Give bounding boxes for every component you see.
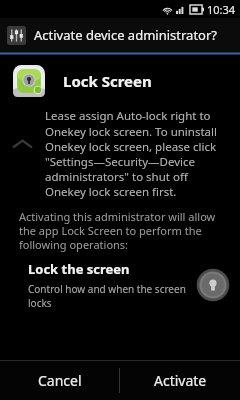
staticText: Activate device administrator?	[34, 26, 217, 44]
staticText: 10:34	[207, 2, 236, 17]
staticText: Activating this administrator will allow…	[19, 209, 226, 252]
staticText: Control how and when the screen locks	[28, 282, 190, 310]
button[interactable]: Collapse	[0, 107, 45, 181]
staticText: Lease assign Auto-lock right to Onekey l…	[45, 108, 230, 199]
staticText: Cancel	[38, 371, 82, 390]
staticText: Activate	[154, 371, 207, 390]
staticText: Lock the screen	[28, 260, 130, 278]
button[interactable]: Activate	[120, 361, 240, 400]
button[interactable]: Cancel	[0, 361, 119, 400]
staticText: Lock Screen	[63, 71, 152, 91]
button[interactable]: Lock the screen	[0, 260, 240, 310]
